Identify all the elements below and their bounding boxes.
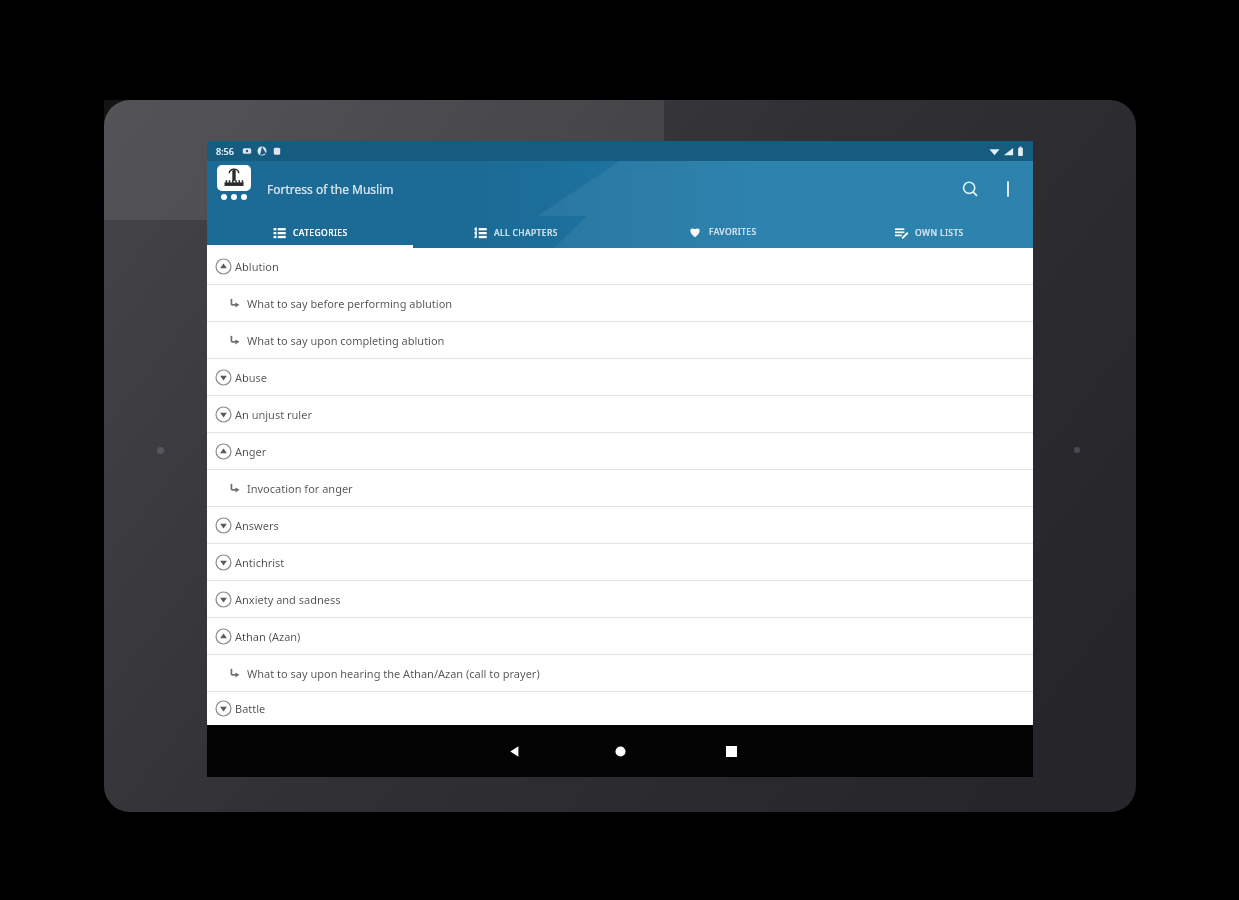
staticText: What to say before performing ablution: [247, 296, 453, 311]
button[interactable]: Anxiety and sadness: [207, 581, 1033, 617]
button[interactable]: Ablution: [207, 248, 1033, 284]
button[interactable]: An unjust ruler: [207, 396, 1033, 432]
staticText: Anxiety and sadness: [235, 592, 341, 607]
staticText: What to say upon completing ablution: [247, 333, 445, 348]
button[interactable]: ALL CHAPTERS: [413, 216, 619, 248]
button[interactable]: What to say before performing ablution: [207, 285, 1033, 321]
button[interactable]: Anger: [207, 433, 1033, 469]
button[interactable]: FAVORITES: [619, 216, 826, 248]
button[interactable]: What to say upon hearing the Athan/Azan …: [207, 655, 1033, 691]
button[interactable]: Abuse: [207, 359, 1033, 395]
button[interactable]: Search: [953, 172, 987, 206]
button[interactable]: Recent apps: [714, 734, 748, 768]
button[interactable]: Answers: [207, 507, 1033, 543]
staticText: 8:56: [216, 145, 234, 157]
staticText: Anger: [235, 444, 267, 459]
button[interactable]: CATEGORIES: [207, 216, 413, 248]
staticText: Ablution: [235, 259, 279, 274]
button[interactable]: Battle: [207, 692, 1033, 725]
staticText: OWN LISTS: [915, 227, 964, 239]
button[interactable]: More options: [993, 174, 1023, 204]
staticText: Battle: [235, 701, 266, 716]
staticText: Antichrist: [235, 555, 285, 570]
staticText: Abuse: [235, 370, 268, 385]
staticText: Athan (Azan): [235, 629, 301, 644]
staticText: CATEGORIES: [293, 227, 348, 239]
staticText: What to say upon hearing the Athan/Azan …: [247, 666, 540, 681]
staticText: Fortress of the Muslim: [267, 181, 394, 197]
staticText: Invocation for anger: [247, 481, 353, 496]
button[interactable]: Antichrist: [207, 544, 1033, 580]
staticText: Answers: [235, 518, 279, 533]
button[interactable]: What to say upon completing ablution: [207, 322, 1033, 358]
staticText: ALL CHAPTERS: [494, 227, 558, 239]
button[interactable]: OWN LISTS: [826, 216, 1033, 248]
staticText: An unjust ruler: [235, 407, 312, 422]
button[interactable]: Athan (Azan): [207, 618, 1033, 654]
staticText: FAVORITES: [709, 226, 757, 238]
button[interactable]: Invocation for anger: [207, 470, 1033, 506]
button[interactable]: Back: [497, 734, 531, 768]
button[interactable]: Home: [603, 734, 637, 768]
